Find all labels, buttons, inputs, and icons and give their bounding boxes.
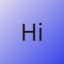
- staticText: Hi: [20, 17, 43, 47]
